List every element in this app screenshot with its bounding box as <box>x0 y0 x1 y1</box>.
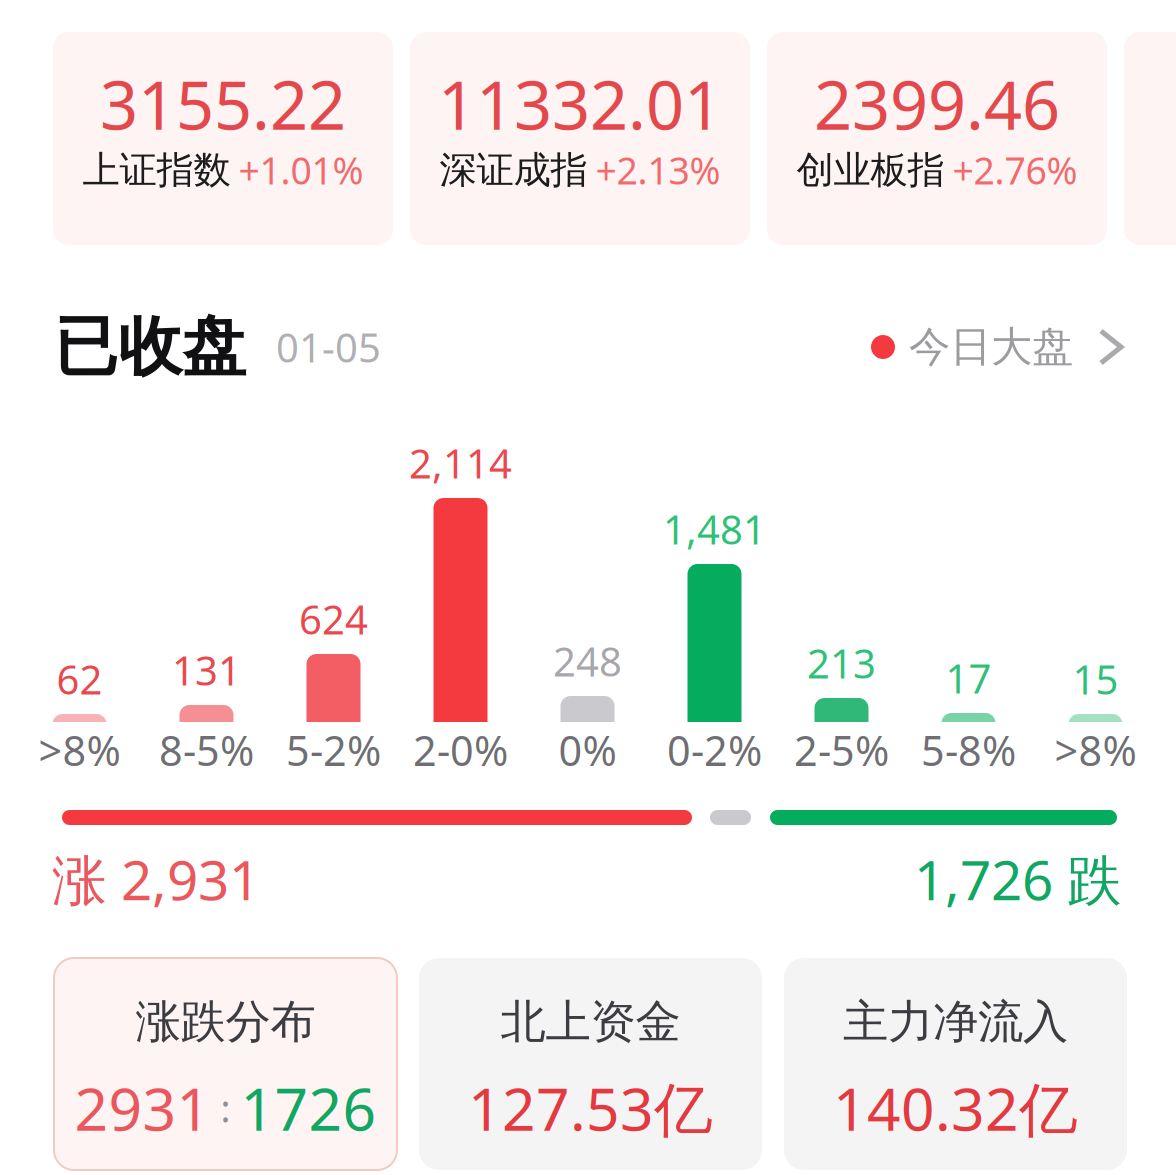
staticText: 8-5% <box>159 723 254 777</box>
staticText: 1,481 <box>663 502 766 555</box>
staticText: +1.01% <box>238 145 363 195</box>
staticText: 0% <box>558 723 616 777</box>
staticText: 2,114 <box>409 436 512 489</box>
staticText: 11332.01 <box>438 60 722 148</box>
button[interactable]: 涨跌分布 <box>54 958 397 1170</box>
staticText: >8% <box>1054 723 1136 777</box>
staticText: 624 <box>299 592 368 645</box>
staticText: +2.13% <box>595 145 720 195</box>
staticText: 1726 <box>240 1069 376 1147</box>
staticText: +2.76% <box>952 145 1077 195</box>
staticText: 01-05 <box>246 320 381 373</box>
button[interactable]: 3155.22 <box>53 32 393 245</box>
staticText: 248 <box>553 634 622 687</box>
staticText: 0-2% <box>667 723 762 777</box>
staticText: 140.32亿 <box>833 1069 1078 1147</box>
button[interactable]: 11332.01 <box>410 32 750 245</box>
staticText: 2399.46 <box>814 60 1060 148</box>
staticText: 2931 <box>74 1069 210 1147</box>
staticText: 涨 2,931 <box>52 843 260 915</box>
staticText: 5-2% <box>286 723 381 777</box>
button[interactable]: 今日大盘 <box>871 322 1127 372</box>
button[interactable]: 2399.46 <box>767 32 1107 245</box>
staticText: 2-0% <box>413 723 508 777</box>
staticText: 涨跌分布 <box>135 994 315 1050</box>
staticText: 62 <box>56 652 102 705</box>
staticText: : <box>210 1083 240 1133</box>
staticText: >8% <box>38 723 120 777</box>
staticText: 17 <box>945 651 991 704</box>
staticText: 创业板指 <box>796 147 944 193</box>
staticText: 主力净流入 <box>843 994 1068 1050</box>
button[interactable]: 北上资金 <box>419 958 762 1170</box>
staticText: 今日大盘 <box>909 322 1073 372</box>
staticText: 15 <box>1072 652 1118 705</box>
staticText: 131 <box>172 643 241 696</box>
staticText: 上证指数 <box>82 147 230 193</box>
staticText: 2-5% <box>794 723 889 777</box>
staticText: 5-8% <box>921 723 1016 777</box>
staticText: 北上资金 <box>500 994 680 1050</box>
staticText: 3155.22 <box>100 60 346 148</box>
staticText: 213 <box>807 636 876 689</box>
button[interactable]: 主力净流入 <box>784 958 1127 1170</box>
staticText: 127.53亿 <box>468 1069 713 1147</box>
staticText: 1,726 跌 <box>914 843 1122 915</box>
staticText: 深证成指 <box>439 147 587 193</box>
staticText: 已收盘 <box>54 308 246 386</box>
